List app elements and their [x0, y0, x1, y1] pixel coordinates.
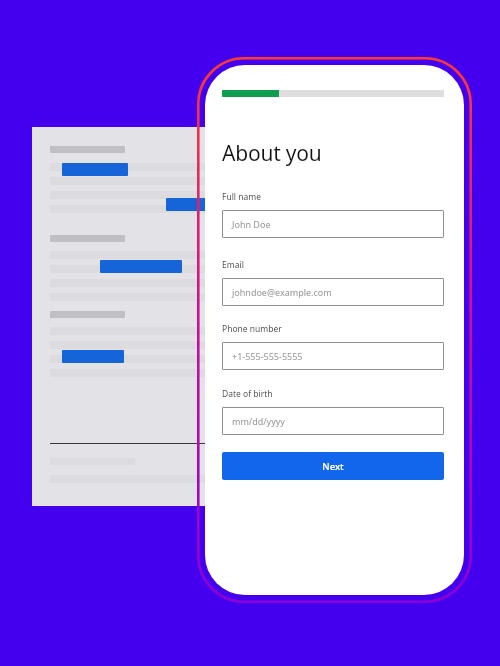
- staticText: Email: [222, 259, 244, 271]
- staticText: mm/dd/yyyy: [232, 415, 285, 427]
- button[interactable]: Next: [222, 452, 444, 480]
- staticText: Phone number: [222, 323, 282, 335]
- button[interactable]: John Doe: [222, 210, 444, 238]
- button[interactable]: +1-555-555-5555: [222, 342, 444, 370]
- staticText: About you: [222, 139, 322, 167]
- staticText: Date of birth: [222, 388, 273, 400]
- button[interactable]: johndoe@example.com: [222, 278, 444, 306]
- button[interactable]: mm/dd/yyyy: [222, 407, 444, 435]
- staticText: +1-555-555-5555: [232, 350, 303, 362]
- staticText: Next: [322, 460, 344, 473]
- staticText: John Doe: [232, 218, 271, 230]
- staticText: Full name: [222, 191, 262, 203]
- staticText: johndoe@example.com: [232, 286, 332, 298]
